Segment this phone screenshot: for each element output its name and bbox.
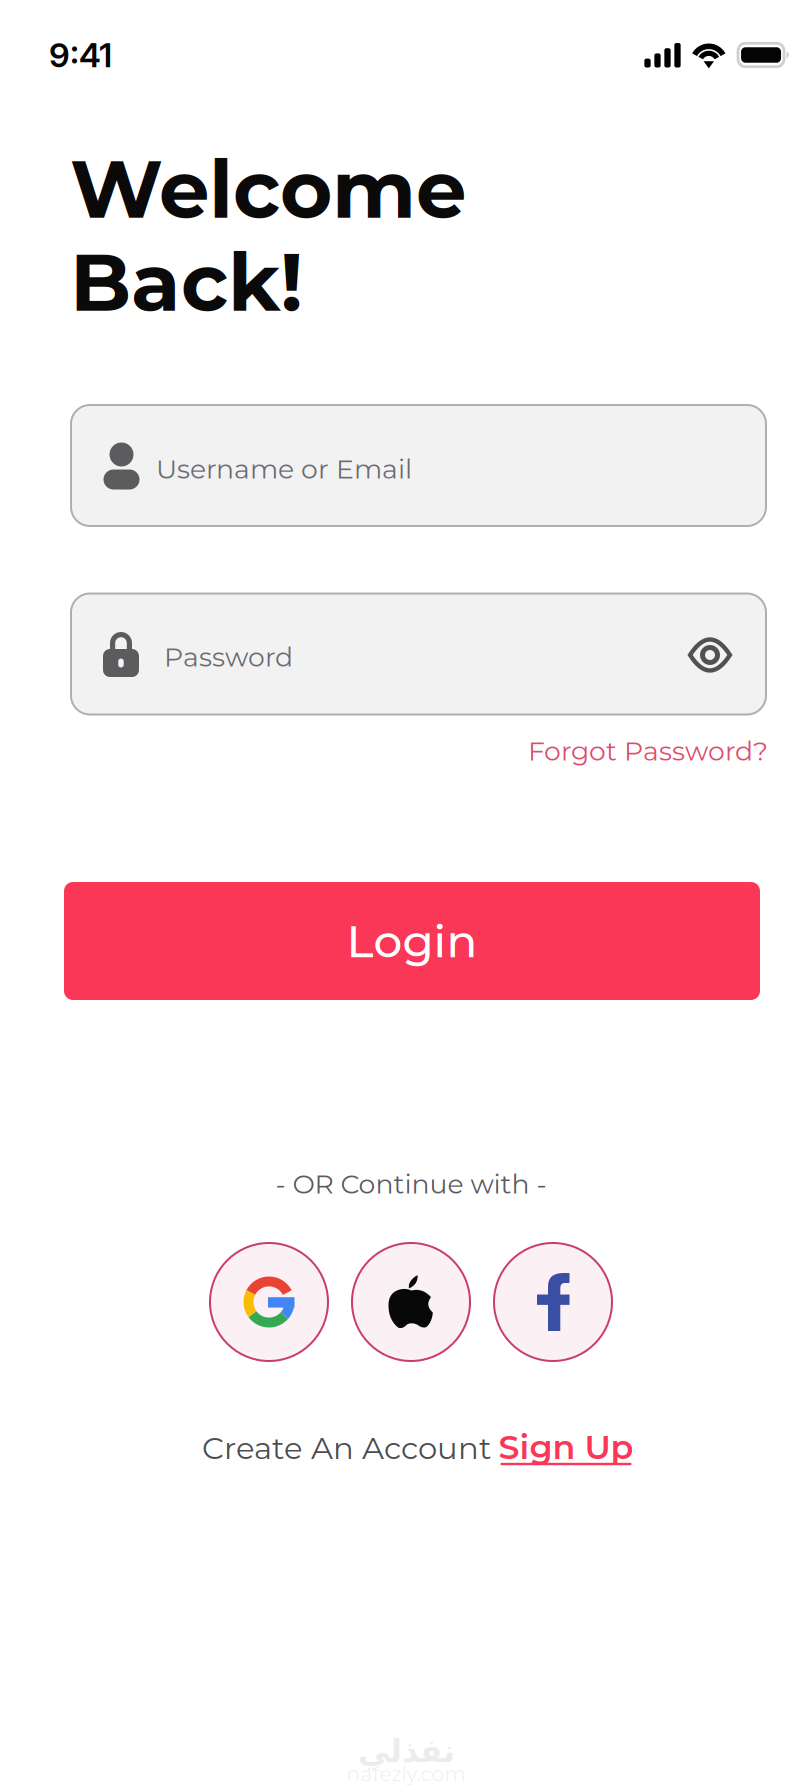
button[interactable]: Login (64, 882, 760, 1000)
staticText: نفذلي (357, 1732, 454, 1770)
staticText: Welcome (70, 140, 466, 238)
staticText: Create An Account (202, 1429, 491, 1467)
staticText: Forgot Password? (528, 735, 768, 767)
staticText: Username or Email (156, 453, 412, 485)
staticText: nafezly.com (346, 1762, 465, 1786)
staticText: Login (346, 913, 477, 969)
staticText: Password (164, 641, 293, 673)
button[interactable]: Continue with Apple (352, 1243, 470, 1361)
button[interactable]: Continue with Google (210, 1243, 328, 1361)
staticText: Sign Up (498, 1427, 633, 1467)
button[interactable]: Continue with Facebook (494, 1243, 612, 1361)
button[interactable]: Forgot Password? (508, 729, 768, 773)
staticText: - OR Continue with - (275, 1168, 546, 1200)
staticText: Back! (70, 233, 303, 331)
staticText: 9:41 (49, 35, 112, 75)
button[interactable]: Sign Up (491, 1422, 641, 1474)
button[interactable]: Show password (662, 600, 758, 710)
